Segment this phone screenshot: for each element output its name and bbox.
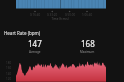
- staticText: 0:50:00: [62, 13, 78, 17]
- staticText: 120: [6, 77, 12, 81]
- staticText: 0:33:20: [44, 13, 60, 17]
- staticText: 1:06:40: [79, 13, 95, 17]
- staticText: Maximum: [80, 50, 95, 54]
- staticText: Heart Rate (bpm): [4, 30, 41, 36]
- staticText: 168: [81, 38, 95, 49]
- staticText: Average: [29, 50, 41, 54]
- staticText: Time (h:m:s): [45, 17, 75, 21]
- button[interactable]: 0:16:40: [0, 0, 124, 82]
- staticText: 0:16:40: [27, 13, 43, 17]
- staticText: 147: [28, 38, 42, 49]
- staticText: 160: [6, 66, 12, 70]
- staticText: 140: [6, 72, 12, 76]
- staticText: 180: [6, 61, 12, 65]
